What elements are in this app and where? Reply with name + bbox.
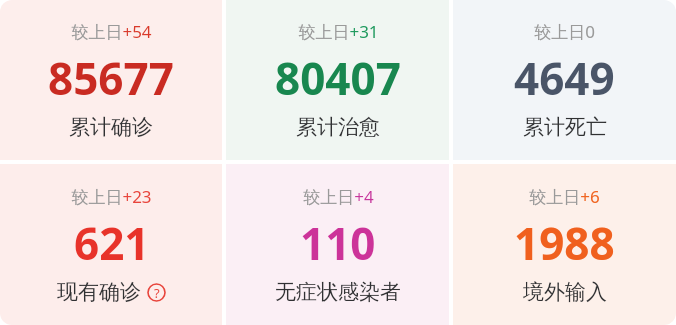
button[interactable]: 较上日+4 [226, 164, 449, 325]
button[interactable]: 较上日+31 [226, 0, 449, 160]
button[interactable]: 较上日+6 [453, 164, 676, 325]
staticText: 110 [300, 213, 376, 273]
staticText: 较上日+6 [529, 185, 600, 208]
staticText: 较上日+23 [71, 185, 152, 208]
button[interactable]: Help [147, 283, 166, 302]
staticText: 较上日+4 [303, 185, 374, 208]
button[interactable]: 较上日0 [453, 0, 676, 160]
button[interactable]: 较上日+23 [0, 164, 222, 325]
staticText: 1988 [514, 213, 615, 273]
staticText: 现有确诊 [57, 279, 141, 305]
staticText: 较上日+31 [298, 20, 379, 43]
staticText: 较上日+54 [71, 20, 152, 43]
staticText: ? [154, 284, 160, 302]
staticText: 85677 [48, 48, 174, 108]
button[interactable]: 较上日+54 [0, 0, 222, 160]
staticText: 80407 [275, 48, 401, 108]
staticText: 累计死亡 [523, 114, 607, 140]
staticText: 无症状感染者 [275, 279, 401, 305]
staticText: 621 [74, 213, 150, 273]
staticText: 累计确诊 [69, 114, 153, 140]
staticText: 4649 [514, 48, 615, 108]
staticText: 累计治愈 [296, 114, 380, 140]
staticText: 较上日0 [534, 20, 595, 43]
staticText: 境外输入 [523, 279, 607, 305]
